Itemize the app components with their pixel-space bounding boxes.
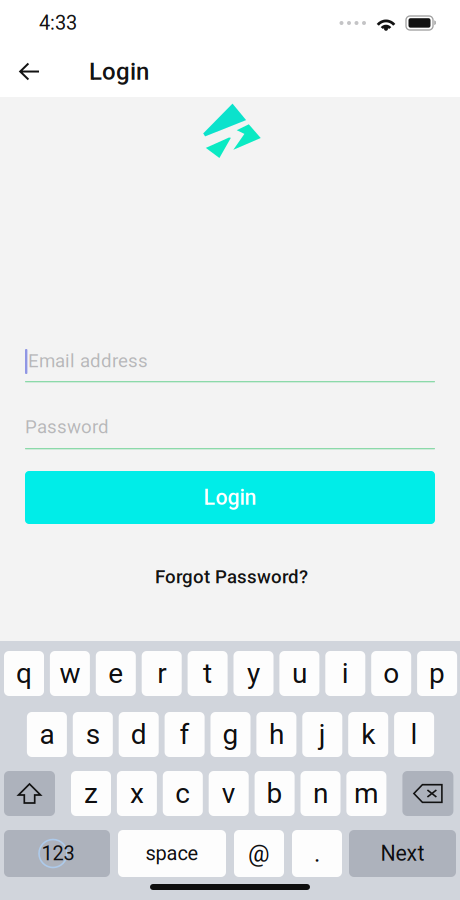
button[interactable]: p (417, 651, 457, 696)
staticText: i (342, 657, 349, 690)
staticText: e (108, 657, 123, 690)
button[interactable]: x (117, 771, 157, 816)
button[interactable]: Next (349, 830, 456, 877)
staticText: l (411, 718, 418, 751)
staticText: t (203, 657, 212, 690)
staticText: x (130, 777, 144, 810)
staticText: v (222, 777, 236, 810)
staticText: h (269, 718, 284, 751)
button[interactable]: u (279, 651, 319, 696)
staticText: Email address (28, 350, 148, 372)
button[interactable]: Delete (402, 771, 453, 816)
button[interactable]: space (118, 830, 226, 877)
button[interactable]: b (255, 771, 295, 816)
button[interactable]: n (300, 771, 340, 816)
staticText: d (131, 718, 147, 751)
staticText: g (222, 718, 238, 751)
staticText: . (314, 839, 320, 867)
staticText: Next (380, 841, 424, 866)
button[interactable]: h (256, 712, 296, 757)
staticText: o (383, 657, 399, 690)
staticText: z (84, 777, 98, 810)
button[interactable]: f (165, 712, 205, 757)
staticText: y (247, 657, 260, 690)
staticText: j (319, 718, 326, 751)
button[interactable]: c (163, 771, 203, 816)
staticText: 123 (41, 842, 74, 865)
button[interactable]: j (302, 712, 342, 757)
button[interactable]: q (4, 651, 44, 696)
staticText: k (361, 718, 375, 751)
button[interactable]: r (142, 651, 182, 696)
button[interactable]: Back (0, 46, 56, 97)
button[interactable]: o (371, 651, 411, 696)
button[interactable]: Shift (4, 771, 55, 816)
staticText: Password (25, 416, 109, 438)
staticText: q (16, 657, 32, 690)
button[interactable]: z (71, 771, 111, 816)
staticText: c (175, 777, 190, 810)
button[interactable]: d (119, 712, 159, 757)
staticText: s (86, 718, 100, 751)
button[interactable]: Login (25, 471, 435, 524)
staticText: Login (203, 485, 256, 510)
button[interactable]: Numbers (4, 830, 110, 877)
button[interactable]: l (394, 712, 434, 757)
staticText: w (59, 657, 80, 690)
button[interactable]: g (210, 712, 250, 757)
staticText: f (180, 718, 190, 751)
staticText: space (145, 842, 198, 865)
button[interactable]: Forgot Password? (147, 558, 316, 596)
button[interactable]: y (233, 651, 273, 696)
staticText: Forgot Password? (155, 566, 308, 588)
button[interactable]: k (348, 712, 388, 757)
staticText: a (39, 718, 54, 751)
button[interactable]: m (346, 771, 386, 816)
button[interactable]: a (27, 712, 67, 757)
button[interactable]: @ (234, 830, 284, 877)
button[interactable]: w (50, 651, 90, 696)
staticText: 4:33 (39, 11, 77, 35)
button[interactable]: s (73, 712, 113, 757)
staticText: m (354, 777, 379, 810)
staticText: b (267, 777, 283, 810)
staticText: n (313, 777, 328, 810)
button[interactable]: v (209, 771, 249, 816)
button[interactable]: i (325, 651, 365, 696)
staticText: r (157, 657, 166, 690)
button[interactable]: e (96, 651, 136, 696)
staticText: p (429, 657, 445, 690)
staticText: Login (89, 57, 149, 85)
staticText: u (292, 657, 307, 690)
button[interactable]: t (188, 651, 228, 696)
staticText: @ (248, 839, 270, 867)
button[interactable]: . (292, 830, 342, 877)
